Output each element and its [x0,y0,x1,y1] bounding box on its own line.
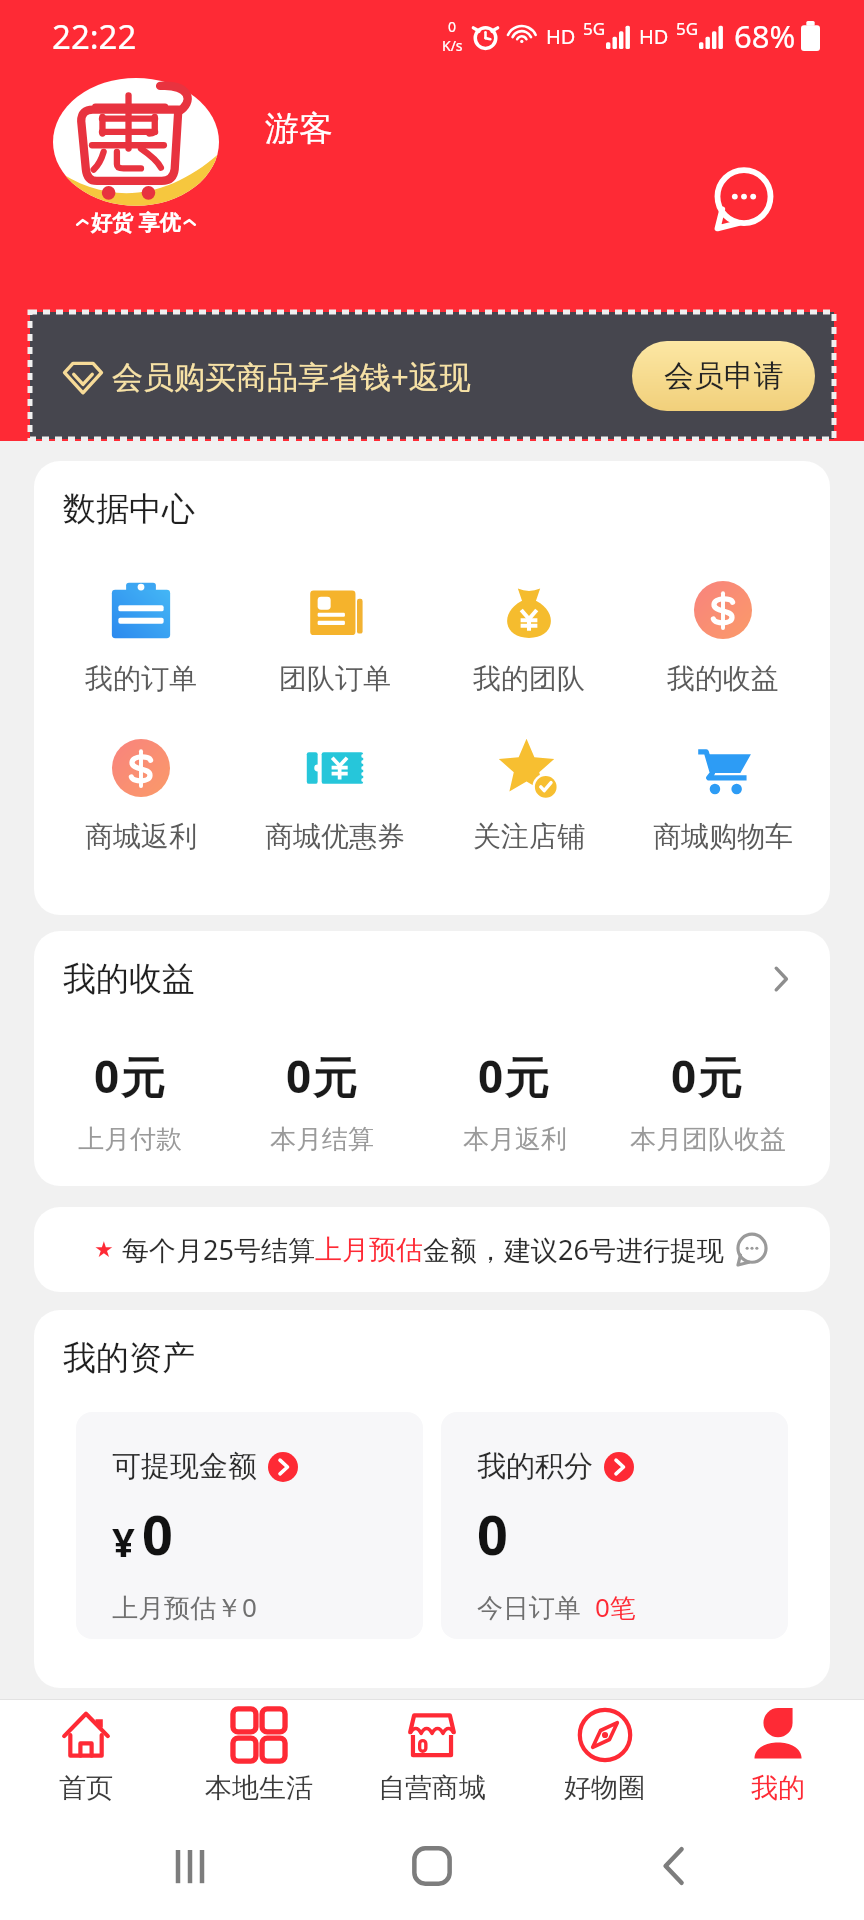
staticText: 会员申请 [664,357,784,395]
staticText: 0 [477,1497,508,1571]
staticText: 68% [734,15,796,57]
staticText: 我的 [751,1771,805,1805]
staticText: 0 [142,1497,173,1571]
button[interactable]: 我的团队 [432,579,626,696]
button[interactable]: 可提现金额 [76,1412,423,1639]
button[interactable]: 我的积分 [441,1412,788,1639]
button[interactable]: 我的订单 [44,579,238,696]
staticText: 我的收益 [63,958,195,1000]
staticText: 好物圈 [564,1771,645,1805]
button[interactable]: 我的 [691,1700,864,1812]
staticText: 0 [448,17,457,36]
staticText: ¥ [112,1514,135,1568]
staticText: 团队订单 [279,661,391,696]
staticText: HD [546,23,576,50]
staticText: 自营商城 [378,1771,486,1805]
staticText: 商城购物车 [653,819,793,854]
button[interactable]: Back [652,1844,696,1888]
staticText: 5G [676,17,699,40]
button[interactable]: Messages [710,166,778,234]
button[interactable]: 首页 [0,1700,172,1812]
button[interactable]: 关注店铺 [432,737,626,854]
staticText: 商城返利 [85,819,197,854]
staticText: 本月结算 [270,1123,374,1156]
staticText: 数据中心 [63,488,195,530]
staticText: 我的收益 [667,661,779,696]
staticText: 本地生活 [205,1771,313,1805]
staticText: 上月付款 [78,1123,182,1156]
staticText: 可提现金额 [112,1448,257,1485]
staticText: K/s [442,36,463,55]
staticText: 今日订单 [477,1589,595,1625]
staticText: 游客 [265,107,333,150]
button[interactable]: 好物圈 [518,1700,691,1812]
staticText: 0笔 [595,1589,636,1625]
button[interactable]: 我的收益 [626,579,820,696]
staticText: 每个月25号结算 [122,1231,315,1268]
button[interactable]: 商城优惠券 [238,737,432,854]
staticText: 我的订单 [85,661,197,696]
staticText: 0元 [478,1046,551,1106]
staticText: 0元 [671,1046,744,1106]
button[interactable]: 商城返利 [44,737,238,854]
staticText: HD [639,23,669,50]
staticText: 上月预估￥0 [112,1589,257,1625]
button[interactable]: 会员购买商品享省钱+返现 [30,312,834,439]
staticText: 本月团队收益 [630,1123,786,1156]
staticText: 会员购买商品享省钱+返现 [112,355,471,397]
button[interactable]: 会员申请 [632,341,815,411]
staticText: 首页 [59,1771,113,1805]
staticText: 我的资产 [63,1337,195,1379]
staticText: 我的积分 [477,1448,593,1485]
staticText: 本月返利 [463,1123,567,1156]
button[interactable]: Recents [168,1844,212,1888]
staticText: 关注店铺 [473,819,585,854]
button[interactable]: Home [410,1844,454,1888]
staticText: 22:22 [52,14,137,59]
staticText: 0元 [286,1046,359,1106]
staticText: ★ [94,1237,114,1263]
staticText: 我的团队 [473,661,585,696]
staticText: 商城优惠券 [265,819,405,854]
staticText: 5G [583,17,606,40]
staticText: 好货 享优 [91,208,181,237]
button[interactable]: 我的收益 [34,931,830,1000]
staticText: 0元 [94,1046,167,1106]
staticText: 金额，建议26号进行提现 [423,1231,724,1268]
button[interactable]: 自营商城 [345,1700,518,1812]
staticText: 上月预估 [315,1233,423,1267]
button[interactable]: 团队订单 [238,579,432,696]
button[interactable]: 本地生活 [172,1700,345,1812]
button[interactable]: 商城购物车 [626,737,820,854]
